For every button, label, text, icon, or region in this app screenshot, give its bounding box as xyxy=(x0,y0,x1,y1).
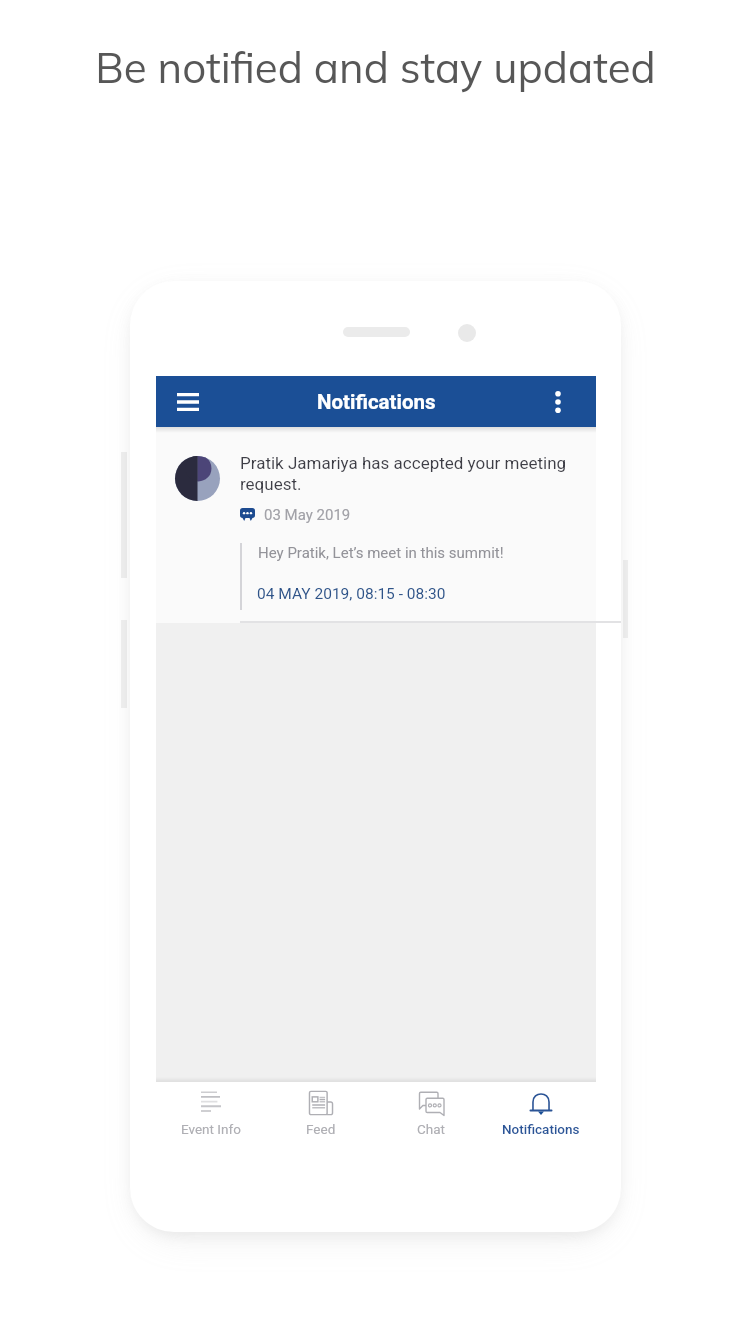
button[interactable]: Pratik Jamariya has accepted your meetin… xyxy=(156,427,596,623)
button[interactable]: Chat xyxy=(376,1082,486,1146)
staticText: 03 May 2019 xyxy=(264,506,351,524)
staticText: 04 MAY 2019, 08:15 - 08:30 xyxy=(257,585,446,603)
staticText: Pratik Jamariya has accepted your meetin… xyxy=(240,453,578,494)
button[interactable]: More options xyxy=(520,376,596,427)
staticText: Chat xyxy=(417,1121,445,1137)
staticText: Be notified and stay updated xyxy=(95,41,656,94)
staticText: Feed xyxy=(306,1121,336,1137)
staticText: Notifications xyxy=(502,1121,580,1137)
button[interactable]: Event Info xyxy=(156,1082,266,1146)
staticText: Event Info xyxy=(181,1121,241,1137)
button[interactable]: Feed xyxy=(266,1082,376,1146)
button[interactable]: Notifications xyxy=(486,1082,596,1146)
staticText: Hey Pratik, Let’s meet in this summit! xyxy=(258,544,504,562)
staticText: Notifications xyxy=(317,390,436,414)
button[interactable]: Open navigation menu xyxy=(156,376,220,427)
